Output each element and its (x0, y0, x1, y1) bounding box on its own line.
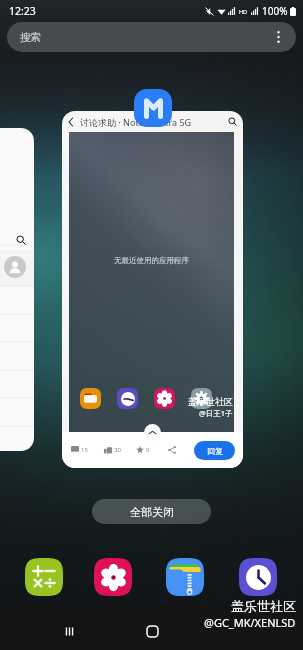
button[interactable]: Search (16, 235, 26, 245)
button[interactable]: 30 (104, 446, 121, 454)
other: Search (228, 117, 237, 126)
staticText: 12:23 (9, 4, 36, 18)
other: Back (67, 118, 75, 126)
staticText: 搜索 (20, 31, 41, 44)
button[interactable] (4, 256, 26, 278)
staticText: 全部关闭 (130, 505, 174, 519)
button[interactable]: 15 (71, 446, 88, 454)
staticText: 0 (146, 446, 150, 454)
staticText: @日王1子 (199, 408, 233, 418)
button[interactable]: Search (0, 128, 34, 451)
staticText: 盖乐世社区 (188, 396, 233, 407)
button[interactable]: 0 (136, 446, 150, 454)
staticText: 讨论求助 · Note20 Ultra 5G (80, 116, 192, 128)
staticText: 回复 (207, 446, 223, 456)
staticText: 无最近使用的应用程序 (114, 256, 189, 265)
staticText: 30 (114, 446, 121, 454)
button[interactable] (117, 388, 138, 409)
button[interactable] (25, 558, 63, 596)
button[interactable]: Back (224, 620, 246, 642)
button[interactable]: 全部关闭 (92, 499, 211, 524)
button[interactable]: Collapse (144, 424, 161, 441)
button[interactable]: App icon (134, 89, 172, 127)
staticText: HD (239, 8, 248, 15)
button[interactable]: Back (62, 111, 243, 468)
button[interactable]: 搜索 (7, 22, 296, 52)
staticText: 盖乐世社区 (231, 598, 296, 614)
button[interactable] (80, 388, 101, 409)
other: Search (16, 235, 26, 245)
button[interactable] (154, 388, 175, 409)
button[interactable]: More options (270, 29, 286, 45)
button[interactable]: Recents (58, 620, 80, 642)
button[interactable]: Share (165, 443, 179, 457)
button[interactable] (94, 558, 132, 596)
button[interactable]: 回复 (194, 441, 235, 460)
button[interactable] (166, 558, 204, 596)
button[interactable] (239, 558, 277, 596)
staticText: 100% (262, 4, 288, 18)
button[interactable]: Home (141, 620, 163, 642)
staticText: 15 (81, 446, 88, 454)
button[interactable] (191, 388, 212, 409)
staticText: @GC_MK/XENLSD (204, 615, 296, 630)
